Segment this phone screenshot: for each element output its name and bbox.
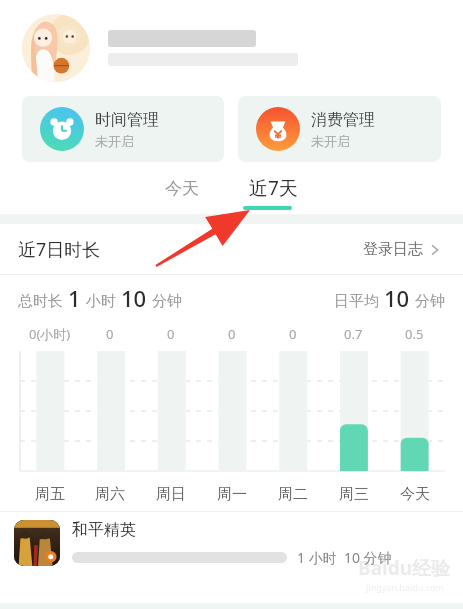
staticText: 周二	[278, 485, 308, 504]
staticText: 10	[384, 283, 410, 313]
button[interactable]: 头像	[22, 14, 90, 82]
staticText: 0.5	[405, 325, 424, 343]
staticText: 0.7	[344, 325, 363, 343]
other: 消费管理	[256, 107, 300, 151]
button[interactable]: 和平精英	[0, 512, 463, 574]
button[interactable]: 时间管理	[22, 96, 224, 162]
staticText: 周三	[339, 485, 369, 504]
staticText: Baidu经验	[358, 555, 451, 581]
staticText: 分钟	[152, 292, 182, 311]
staticText: 近7日时长	[18, 237, 101, 262]
staticText: 0	[106, 325, 114, 343]
staticText: 消费管理	[311, 110, 375, 130]
staticText: 分钟	[415, 292, 445, 311]
staticText: 10	[121, 283, 147, 313]
staticText: 未开启	[311, 133, 350, 149]
button[interactable]: 近7天	[235, 169, 312, 207]
staticText: 未开启	[95, 133, 134, 149]
staticText: 近7天	[249, 175, 298, 201]
staticText: 0	[167, 325, 175, 343]
staticText: 周日	[156, 485, 186, 504]
staticText: 和平精英	[72, 520, 136, 540]
button[interactable]: 今天	[151, 172, 213, 205]
other: 和平精英	[14, 520, 60, 566]
button[interactable]: 消费管理	[238, 96, 441, 162]
staticText: 登录日志	[363, 240, 423, 259]
staticText: 周一	[217, 485, 247, 504]
staticText: 0	[289, 325, 297, 343]
staticText: 0(小时)	[29, 325, 71, 343]
staticText: jingyan.baidu.com	[366, 581, 444, 593]
staticText: 1	[68, 283, 81, 313]
staticText: 日平均	[334, 292, 379, 311]
staticText: 今天	[400, 485, 430, 504]
staticText: 时间管理	[95, 110, 159, 130]
button[interactable]: 头像	[0, 0, 463, 96]
staticText: 今天	[165, 178, 199, 199]
staticText: 0	[228, 325, 236, 343]
staticText: 周五	[35, 485, 65, 504]
other: 时间管理	[40, 107, 84, 151]
staticText: 周六	[95, 485, 125, 504]
staticText: 1 小时 10 分钟	[297, 548, 392, 567]
staticText: 总时长	[18, 292, 63, 311]
staticText: 小时	[86, 292, 116, 311]
button[interactable]: 登录日志	[359, 236, 445, 263]
